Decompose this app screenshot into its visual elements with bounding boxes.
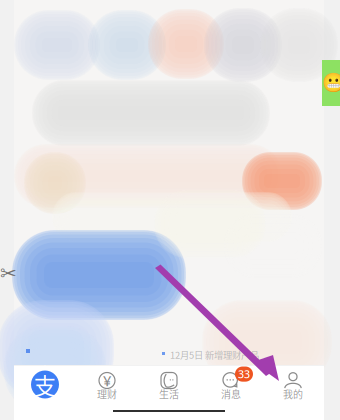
staticText: 理财 <box>97 387 117 401</box>
staticText: 我的 <box>283 387 303 401</box>
staticText: ¥ <box>103 371 111 390</box>
staticText: 消息 <box>221 387 241 401</box>
button[interactable]: ¥ <box>76 370 138 402</box>
staticText: 😬 <box>321 72 340 94</box>
staticText: 支 <box>33 368 56 401</box>
staticText: ✂ <box>0 262 17 285</box>
staticText: 12月5日 新增理财产品 <box>170 348 259 361</box>
button[interactable]: 首页 <box>14 365 76 407</box>
staticText: 生活 <box>159 387 179 401</box>
staticText: 33 <box>238 367 250 381</box>
button[interactable]: 33 <box>200 370 262 402</box>
button[interactable]: 我的 <box>262 370 324 402</box>
button[interactable]: 生活 <box>138 370 200 402</box>
